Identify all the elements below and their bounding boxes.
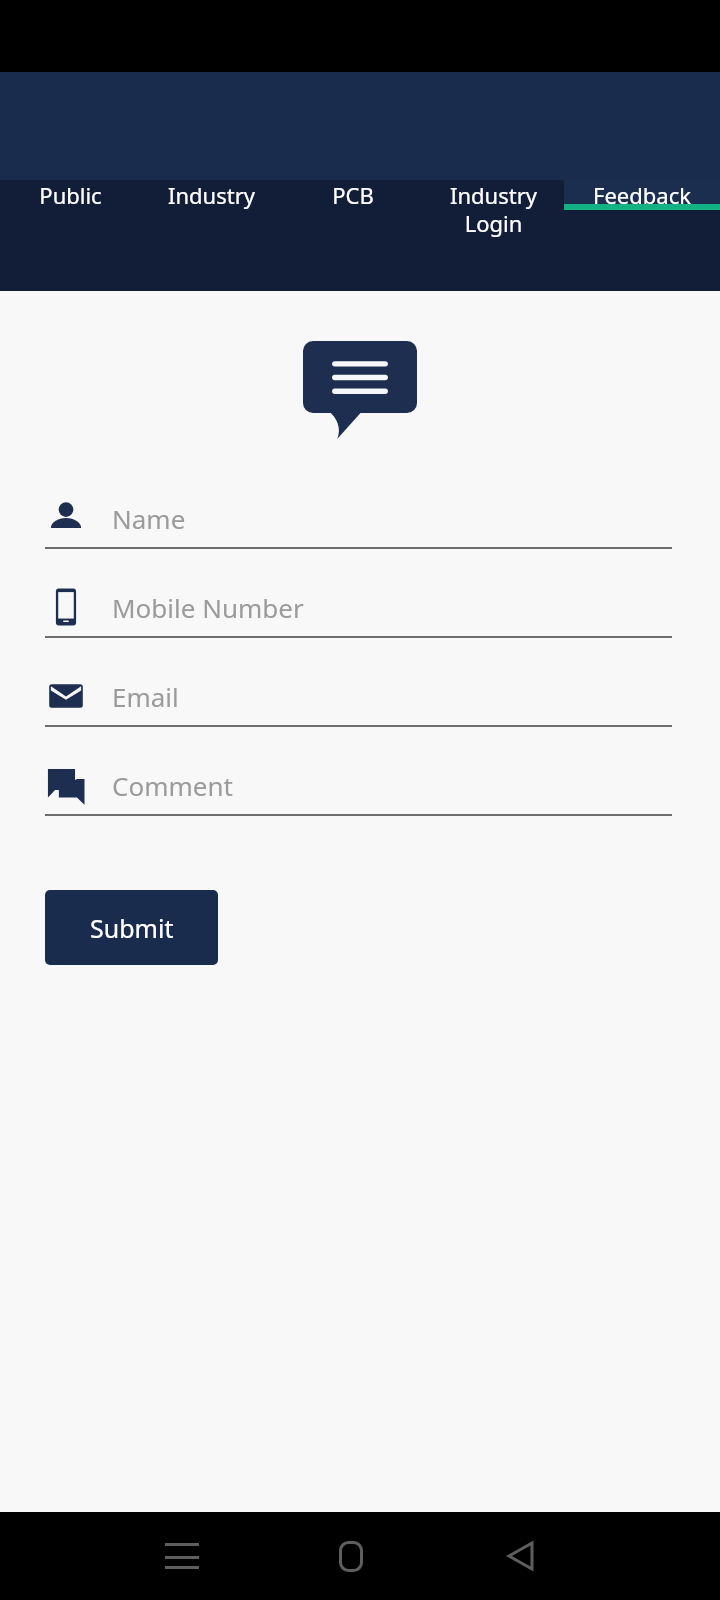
staticText: Feedback xyxy=(593,180,691,210)
staticText: Industry xyxy=(168,180,255,210)
button[interactable]: Back xyxy=(478,1514,562,1598)
button[interactable]: Public xyxy=(0,180,141,210)
staticText: Email xyxy=(112,679,179,714)
button[interactable]: Email xyxy=(45,667,672,756)
button[interactable]: Mobile Number xyxy=(45,578,672,667)
button[interactable]: Industry xyxy=(141,180,282,210)
button[interactable]: Industry Login xyxy=(423,180,564,238)
staticText: Industry Login xyxy=(431,180,556,238)
staticText: Comment xyxy=(112,768,233,803)
staticText: Name xyxy=(112,501,186,536)
button[interactable]: Recent apps xyxy=(140,1514,224,1598)
button[interactable]: Feedback xyxy=(564,180,720,210)
button[interactable]: Home xyxy=(309,1514,393,1598)
staticText: Submit xyxy=(90,911,174,945)
staticText: PCB xyxy=(332,180,374,210)
button[interactable]: PCB xyxy=(282,180,423,210)
button[interactable]: Submit xyxy=(45,890,218,965)
staticText: Mobile Number xyxy=(112,590,304,625)
staticText: Public xyxy=(39,180,102,210)
button[interactable]: Name xyxy=(45,489,672,578)
button[interactable]: Comment xyxy=(45,756,672,845)
